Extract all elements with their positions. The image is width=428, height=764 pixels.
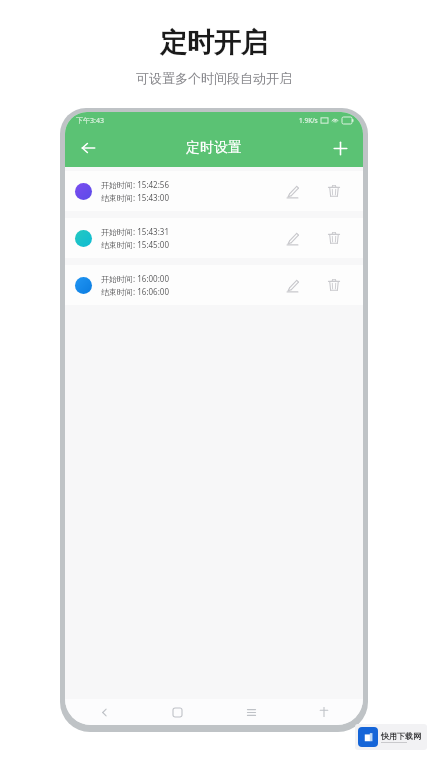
button[interactable]: Add timer xyxy=(323,131,357,165)
button[interactable]: Delete xyxy=(319,176,349,206)
button[interactable]: Home xyxy=(166,701,188,723)
button[interactable]: Back xyxy=(71,131,105,165)
button[interactable]: Recent apps xyxy=(240,701,262,723)
staticText: 结束时间: 16:06:00 xyxy=(101,286,169,297)
staticText: 1.9K/s xyxy=(299,116,318,125)
staticText: 定时开启 xyxy=(160,26,268,60)
button[interactable]: 开始时间: 15:43:31 xyxy=(65,218,363,258)
staticText: 开始时间: 16:00:00 xyxy=(101,273,169,284)
staticText: 结束时间: 15:45:00 xyxy=(101,239,169,250)
staticText: 开始时间: 15:43:31 xyxy=(101,226,169,237)
button[interactable]: Edit xyxy=(277,176,307,206)
staticText: 定时设置 xyxy=(186,139,242,157)
button[interactable]: Edit xyxy=(277,270,307,300)
button[interactable]: Edit xyxy=(277,223,307,253)
staticText: 快用下载网 xyxy=(381,731,421,741)
button[interactable]: Add xyxy=(313,701,335,723)
button[interactable]: Delete xyxy=(319,270,349,300)
staticText: 开始时间: 15:42:56 xyxy=(101,179,169,190)
button[interactable]: Delete xyxy=(319,223,349,253)
staticText: 结束时间: 15:43:00 xyxy=(101,192,169,203)
button[interactable]: 开始时间: 15:42:56 xyxy=(65,171,363,211)
staticText: 下午3:43 xyxy=(76,116,104,126)
button[interactable]: Back xyxy=(93,701,115,723)
button[interactable]: 快用下载网 xyxy=(358,727,424,747)
button[interactable]: 开始时间: 16:00:00 xyxy=(65,265,363,305)
staticText: 可设置多个时间段自动开启 xyxy=(136,70,292,86)
